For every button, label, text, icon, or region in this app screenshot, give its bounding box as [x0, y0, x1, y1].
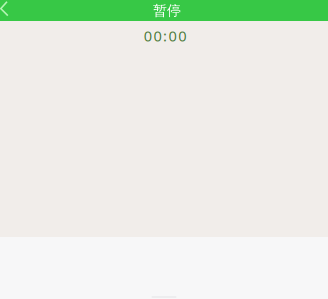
staticText: 暂停: [153, 2, 181, 19]
button[interactable]: Back: [0, 0, 34, 21]
staticText: 00:00: [144, 26, 186, 45]
